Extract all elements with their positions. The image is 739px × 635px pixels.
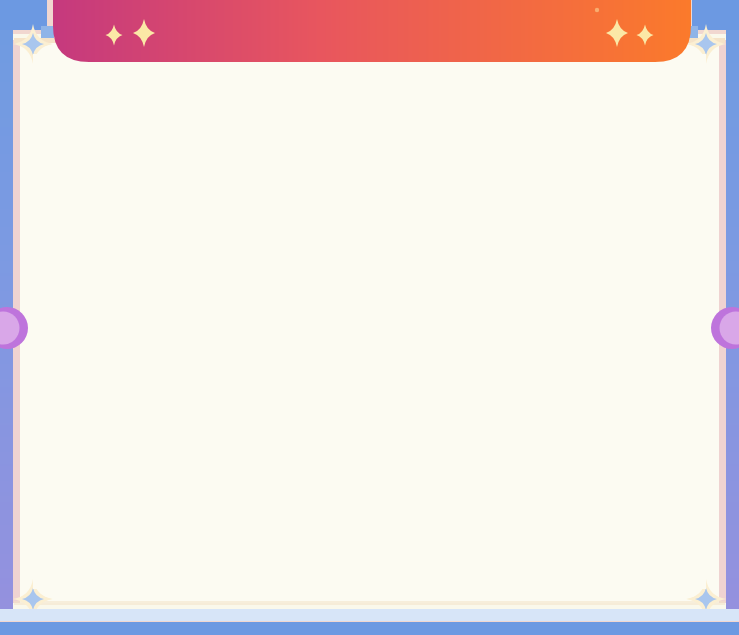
button[interactable]: Decorative header banner — [0, 0, 739, 635]
button[interactable]: Side knob control — [0, 0, 739, 635]
